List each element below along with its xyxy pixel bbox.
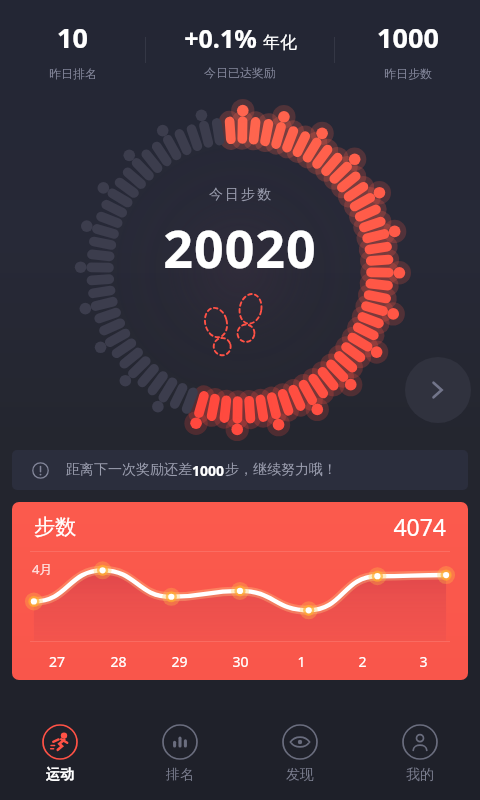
- staticText: 排名: [166, 766, 194, 784]
- staticText: 1000: [192, 461, 225, 480]
- staticText: 昨日步数: [384, 66, 432, 81]
- staticText: 10: [57, 19, 88, 56]
- staticText: 发现: [286, 766, 314, 784]
- staticText: 步，继续努力哦！: [225, 461, 337, 479]
- staticText: 29: [149, 652, 210, 671]
- button[interactable]: 我的: [360, 724, 480, 784]
- staticText: 步数: [34, 514, 76, 540]
- button[interactable]: 步数: [12, 502, 468, 680]
- staticText: 27: [26, 652, 88, 671]
- staticText: 30: [210, 652, 271, 671]
- button[interactable]: 查看更多: [405, 357, 471, 423]
- button[interactable]: 距离下一次奖励还差: [12, 450, 468, 490]
- staticText: 1: [271, 652, 332, 671]
- staticText: 今日步数: [208, 186, 272, 204]
- staticText: 距离下一次奖励还差: [66, 461, 192, 479]
- button[interactable]: 10: [0, 13, 145, 87]
- staticText: 年化: [263, 32, 297, 53]
- staticText: 20020: [163, 212, 317, 283]
- staticText: 4074: [393, 511, 446, 542]
- button[interactable]: +0.1%: [146, 15, 334, 86]
- button[interactable]: 运动: [0, 724, 120, 784]
- button[interactable]: 排名: [120, 724, 240, 784]
- staticText: +0.1%: [184, 21, 257, 55]
- staticText: 2: [332, 652, 393, 671]
- staticText: 4月: [32, 560, 53, 578]
- staticText: 今日已达奖励: [204, 65, 276, 80]
- staticText: 我的: [406, 766, 434, 784]
- staticText: 运动: [46, 766, 74, 784]
- button[interactable]: 发现: [240, 724, 360, 784]
- staticText: 3: [393, 652, 454, 671]
- staticText: 28: [88, 652, 149, 671]
- staticText: 昨日排名: [49, 66, 97, 81]
- button[interactable]: 1000: [335, 13, 480, 87]
- staticText: 1000: [377, 19, 439, 56]
